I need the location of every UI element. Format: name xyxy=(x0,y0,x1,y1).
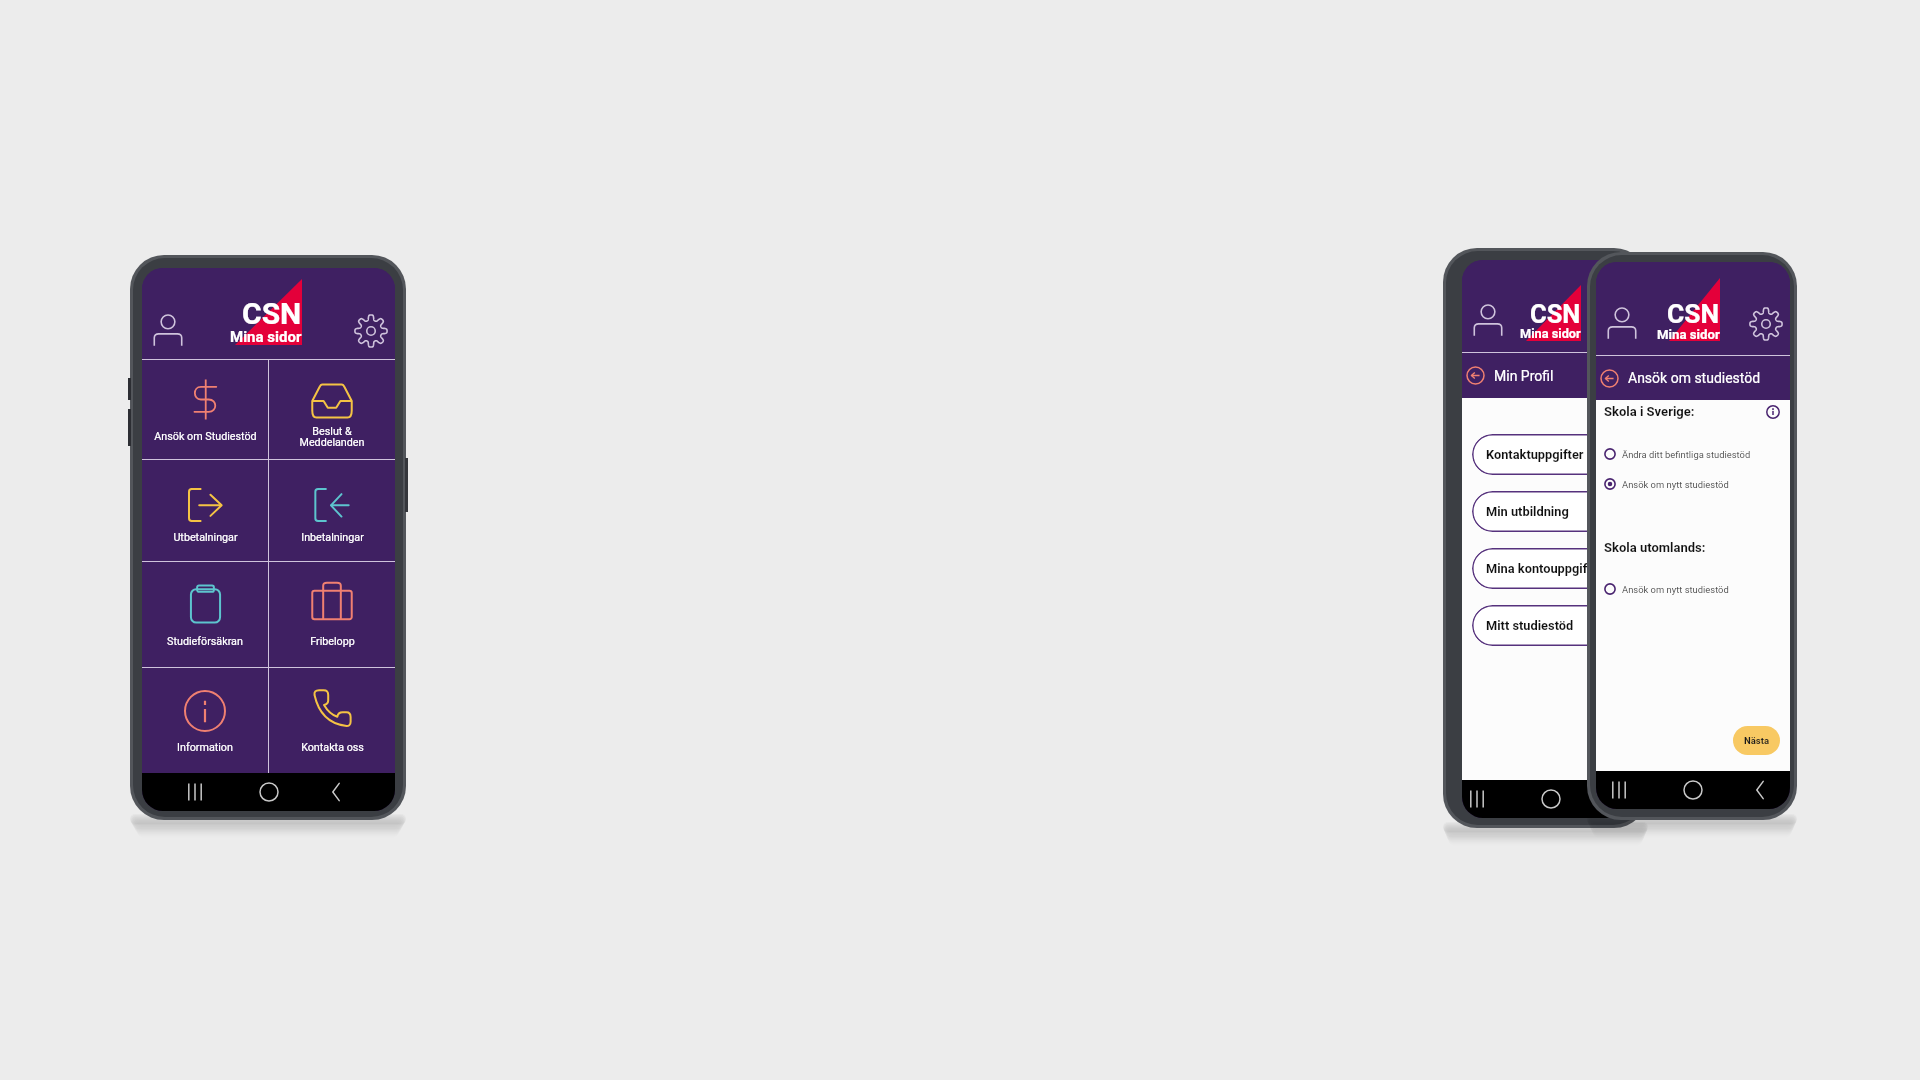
staticText: Min utbildning xyxy=(1486,504,1569,519)
button[interactable]: Tillbaka xyxy=(1600,369,1619,388)
button[interactable]: Ansök om Studiestöd xyxy=(142,360,268,459)
button[interactable]: Tillbaka xyxy=(1466,366,1485,385)
button[interactable]: Profil xyxy=(154,314,182,346)
button[interactable]: Utbetalningar xyxy=(142,460,268,561)
button[interactable]: Profil xyxy=(1474,304,1502,336)
button[interactable]: Nästa xyxy=(1733,726,1780,755)
button[interactable]: Mitt studiestöd xyxy=(1472,605,1639,646)
button[interactable]: Inställningar xyxy=(354,314,388,348)
staticText: Ansök om nytt studiestöd xyxy=(1622,584,1729,595)
staticText: CSN xyxy=(242,296,302,331)
button[interactable]: Min utbildning xyxy=(1472,491,1639,532)
button[interactable]: Inställningar xyxy=(1598,303,1632,337)
staticText: Ansök om nytt studiestöd xyxy=(1622,479,1729,490)
button[interactable]: Tillbaka xyxy=(323,779,349,805)
button[interactable]: Beslut & Meddelanden xyxy=(269,360,395,459)
staticText: CSN xyxy=(1667,299,1720,330)
button[interactable]: Hem xyxy=(256,779,282,805)
button[interactable]: Mina kontouppgifter xyxy=(1472,548,1639,589)
staticText: Nästa xyxy=(1744,735,1769,746)
staticText: Information xyxy=(177,741,233,754)
button[interactable]: Senaste appar xyxy=(1464,786,1490,812)
button[interactable]: Ansök om nytt studiestöd xyxy=(1604,478,1780,490)
button[interactable]: Information xyxy=(142,668,268,773)
staticText: Kontaktuppgifter xyxy=(1486,447,1584,462)
button[interactable]: Tillbaka xyxy=(1747,777,1773,803)
button[interactable]: Senaste appar xyxy=(182,779,208,805)
staticText: Mina kontouppgifter xyxy=(1486,561,1604,576)
button[interactable]: Inställningar xyxy=(1749,307,1783,341)
staticText: Mina sidor xyxy=(230,328,302,346)
button[interactable]: Studieförsäkran xyxy=(142,562,268,667)
button[interactable]: Kontaktuppgifter xyxy=(1472,434,1639,475)
staticText: Beslut & Meddelanden xyxy=(299,425,365,448)
button[interactable]: Profil xyxy=(1608,307,1636,339)
button[interactable]: Information xyxy=(1766,405,1780,419)
button[interactable]: Ändra ditt befintliga studiestöd xyxy=(1604,448,1780,460)
button[interactable]: Hem xyxy=(1538,786,1564,812)
button[interactable]: Ansök om nytt studiestöd xyxy=(1604,583,1780,595)
staticText: Kontakta oss xyxy=(301,741,364,754)
button[interactable]: Kontakta oss xyxy=(269,668,395,773)
staticText: Skola i Sverige: xyxy=(1604,404,1695,419)
staticText: Ansök om studiestöd xyxy=(1628,370,1761,386)
staticText: Utbetalningar xyxy=(173,531,238,544)
staticText: Ansök om Studiestöd xyxy=(154,430,257,443)
staticText: Studieförsäkran xyxy=(167,635,243,648)
button[interactable]: Senaste appar xyxy=(1606,777,1632,803)
staticText: Skola utomlands: xyxy=(1604,540,1706,555)
staticText: Ändra ditt befintliga studiestöd xyxy=(1622,449,1751,460)
staticText: Mina sidor xyxy=(1520,326,1581,341)
button[interactable]: Tillbaka xyxy=(1605,786,1631,812)
button[interactable]: Inbetalningar xyxy=(269,460,395,561)
staticText: Inbetalningar xyxy=(301,531,364,544)
staticText: Min Profil xyxy=(1494,368,1554,384)
button[interactable]: Hem xyxy=(1680,777,1706,803)
button[interactable]: Fribelopp xyxy=(269,562,395,667)
staticText: Mitt studiestöd xyxy=(1486,618,1574,633)
staticText: Fribelopp xyxy=(310,635,355,648)
staticText: Mina sidor xyxy=(1657,327,1720,342)
staticText: CSN xyxy=(1530,299,1581,329)
